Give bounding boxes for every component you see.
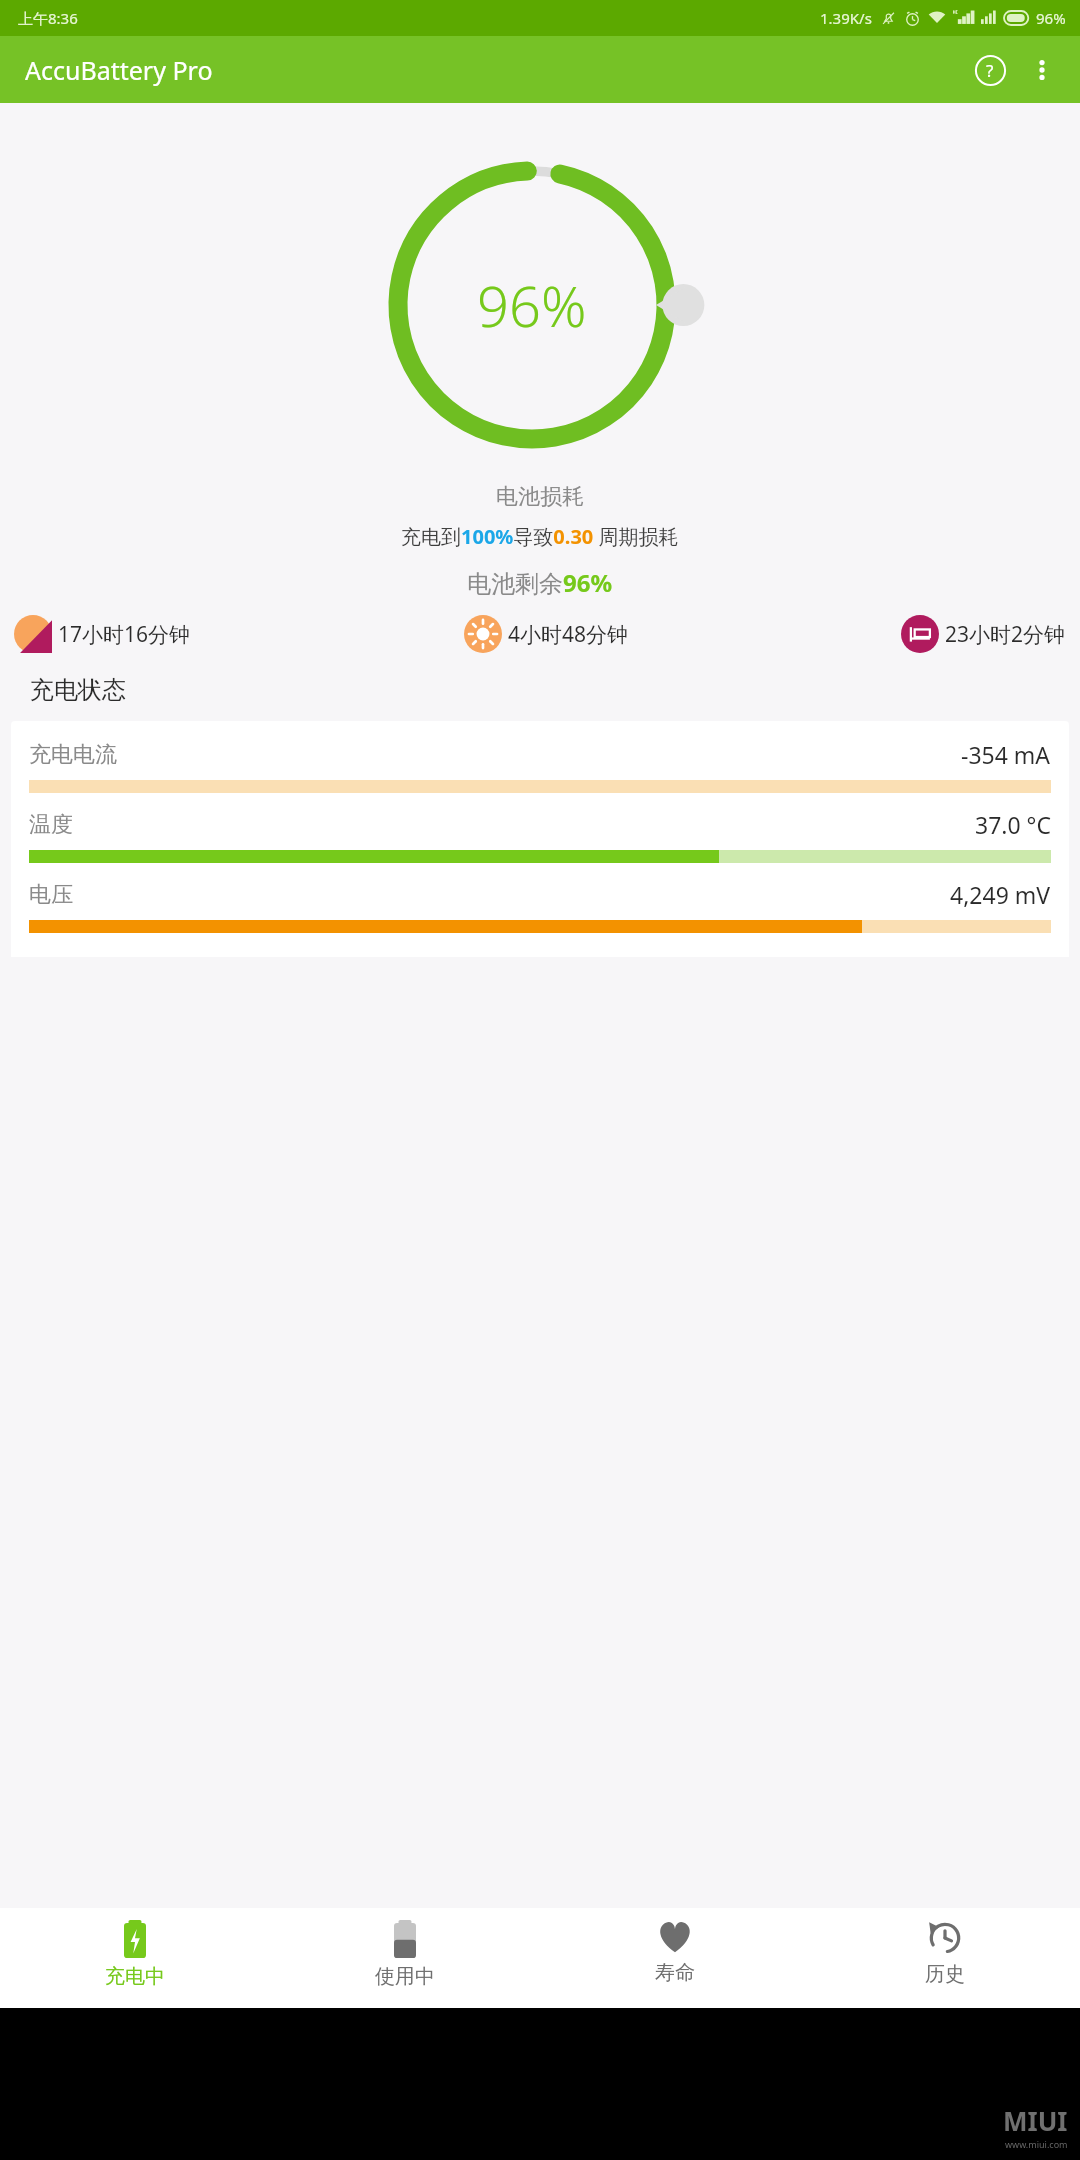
button[interactable]: 使用中 xyxy=(270,1908,540,2008)
staticText: 96% xyxy=(477,267,587,343)
button[interactable]: 充电电流 xyxy=(11,721,1069,957)
staticText: 电压 xyxy=(29,881,73,909)
staticText: 96% xyxy=(1036,8,1066,28)
staticText: 充电电流 xyxy=(29,741,117,769)
staticText: MIUI xyxy=(1003,2103,1068,2138)
staticText: -354 mA xyxy=(961,739,1051,770)
staticText: 电池损耗 xyxy=(496,483,584,511)
staticText: 4小时48分钟 xyxy=(508,620,629,649)
staticText: 历史 xyxy=(925,1962,965,1987)
staticText: 37.0 °C xyxy=(975,809,1051,840)
staticText: AccuBattery Pro xyxy=(25,53,213,87)
staticText: 23小时2分钟 xyxy=(945,620,1066,649)
staticText: 温度 xyxy=(29,811,73,839)
button[interactable]: More options xyxy=(1016,44,1068,96)
button[interactable]: 充电中 xyxy=(0,1908,270,2008)
staticText: 充电到100%导致0.30 周期损耗 xyxy=(401,523,679,550)
staticText: 电池剩余96% xyxy=(467,566,613,599)
staticText: 上午8:36 xyxy=(18,8,78,28)
staticText: 充电中 xyxy=(105,1964,165,1989)
staticText: www.miui.com xyxy=(1005,2138,1068,2150)
staticText: 充电状态 xyxy=(30,675,126,705)
staticText: 使用中 xyxy=(375,1964,435,1989)
staticText: 4,249 mV xyxy=(950,879,1051,910)
button[interactable]: 历史 xyxy=(810,1908,1080,2008)
staticText: 寿命 xyxy=(655,1960,695,1985)
staticText: 1.39K/s xyxy=(820,8,872,28)
staticText: 17小时16分钟 xyxy=(58,620,191,649)
button[interactable]: 寿命 xyxy=(540,1908,810,2008)
button[interactable]: Help xyxy=(964,44,1016,96)
staticText: ? xyxy=(986,59,994,82)
